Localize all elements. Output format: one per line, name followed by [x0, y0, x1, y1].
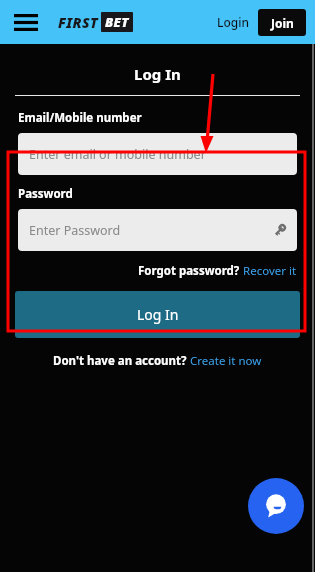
button[interactable]: Log In [15, 291, 300, 338]
staticText: Don't have an account? [53, 353, 190, 369]
button[interactable]: Enter Password [18, 209, 297, 251]
staticText: Create it now [190, 353, 262, 369]
staticText: FIRST [58, 13, 98, 32]
staticText: Forgot password? [138, 263, 243, 279]
staticText: Log In [134, 64, 181, 84]
button[interactable]: Login [217, 14, 249, 30]
staticText: Login [217, 14, 249, 30]
button[interactable]: Show password [272, 222, 288, 238]
staticText: Enter email or mobile number [29, 146, 206, 163]
staticText: Enter Password [29, 222, 121, 239]
button[interactable]: Enter email or mobile number [18, 133, 297, 175]
button[interactable]: Create it now [190, 353, 262, 369]
staticText: BET [105, 13, 129, 31]
button[interactable]: FIRST [58, 12, 133, 32]
staticText: Email/Mobile number [18, 110, 142, 126]
button[interactable]: Open chat [248, 478, 304, 534]
staticText: Password [18, 186, 73, 202]
staticText: Log In [137, 305, 179, 324]
button[interactable]: Recover it [243, 263, 297, 279]
staticText: Join [271, 15, 294, 31]
staticText: Recover it [243, 263, 297, 279]
button[interactable]: Menu [9, 5, 43, 39]
button[interactable]: Join [258, 9, 306, 36]
